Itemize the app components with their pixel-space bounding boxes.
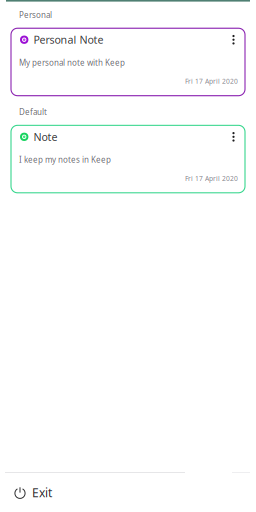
staticText: Personal <box>19 10 52 20</box>
staticText: Personal Note <box>33 33 103 47</box>
staticText: Default <box>19 107 47 117</box>
staticText: Note <box>33 130 57 144</box>
button[interactable]: Exit <box>0 473 256 512</box>
staticText: I keep my notes in Keep <box>19 154 111 165</box>
button[interactable]: Personal Note <box>11 28 245 96</box>
button[interactable]: Note <box>11 125 245 193</box>
staticText: My personal note with Keep <box>19 57 125 68</box>
staticText: Exit <box>32 484 52 500</box>
staticText: Fri 17 April 2020 <box>185 174 238 183</box>
button[interactable]: More options for Personal Note <box>229 33 238 46</box>
staticText: Fri 17 April 2020 <box>185 77 238 86</box>
button[interactable]: More options for Note <box>229 130 238 143</box>
